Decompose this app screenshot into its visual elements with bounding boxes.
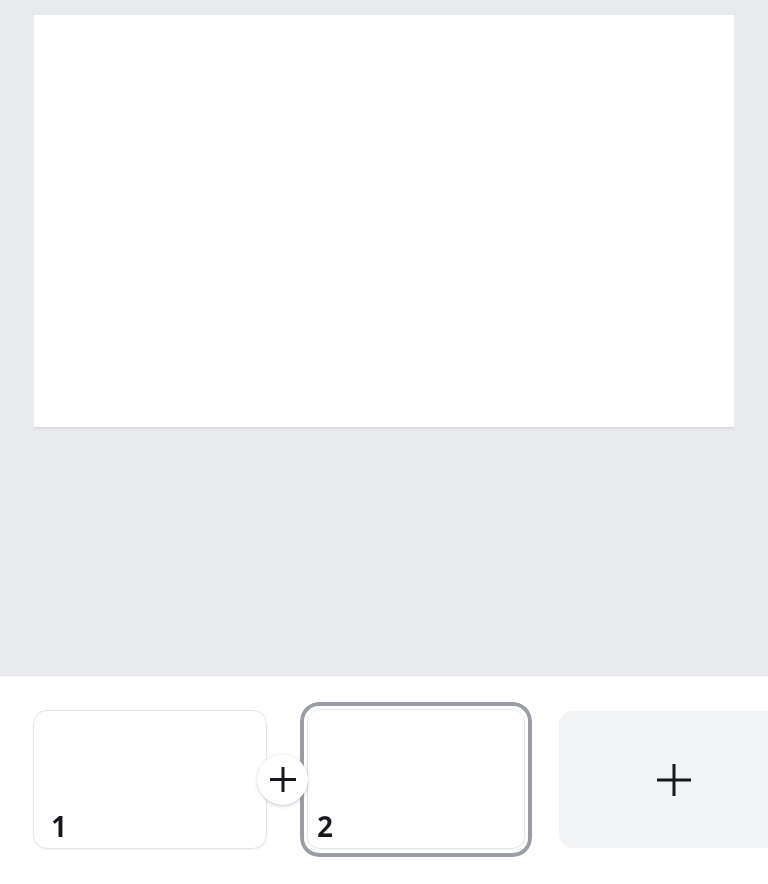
button[interactable]: 1 <box>33 710 267 849</box>
button[interactable]: Insert page <box>257 754 308 805</box>
button[interactable]: Add page <box>559 711 768 848</box>
button[interactable]: 2 <box>300 702 532 857</box>
staticText: 1 <box>51 807 68 845</box>
staticText: 2 <box>317 807 334 845</box>
